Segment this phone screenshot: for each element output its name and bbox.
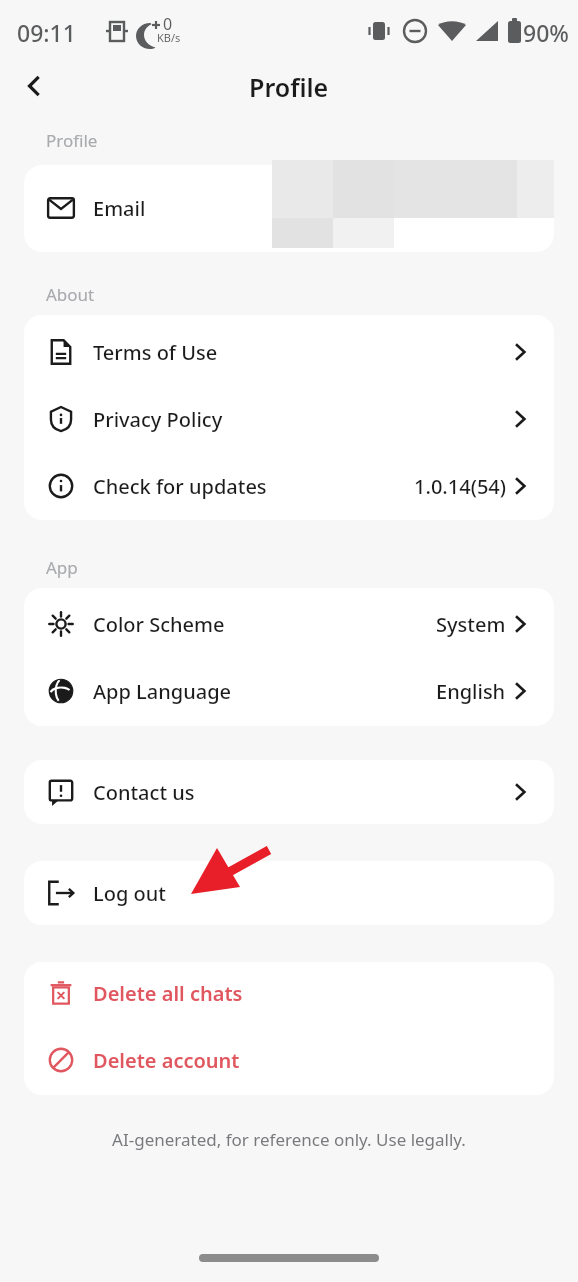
staticText: System xyxy=(436,611,506,638)
staticText: 09:11 xyxy=(17,17,76,48)
staticText: Privacy Policy xyxy=(93,406,223,433)
button[interactable] xyxy=(24,658,554,724)
staticText: AI-generated, for reference only. Use le… xyxy=(112,1128,466,1151)
button[interactable] xyxy=(24,386,554,452)
staticText: 0 xyxy=(163,13,173,35)
staticText: Profile xyxy=(46,129,98,152)
button[interactable] xyxy=(24,175,554,241)
staticText: Delete account xyxy=(93,1047,240,1074)
staticText: 90% xyxy=(523,17,569,48)
button[interactable] xyxy=(24,319,554,385)
staticText: Terms of Use xyxy=(93,339,218,366)
button[interactable] xyxy=(24,453,554,519)
staticText: KB/s xyxy=(157,30,181,45)
staticText: Profile xyxy=(249,70,329,104)
button[interactable]: Back xyxy=(12,63,58,109)
staticText: App xyxy=(46,556,78,579)
staticText: App Language xyxy=(93,678,232,705)
staticText: Check for updates xyxy=(93,473,267,500)
staticText: English xyxy=(436,678,506,705)
staticText: 1.0.14(54) xyxy=(414,473,506,500)
staticText: Contact us xyxy=(93,779,195,806)
staticText: Delete all chats xyxy=(93,980,243,1007)
staticText: Color Scheme xyxy=(93,611,225,638)
button[interactable] xyxy=(24,960,554,1026)
button[interactable] xyxy=(24,591,554,657)
button[interactable] xyxy=(24,1027,554,1093)
staticText: Email xyxy=(93,195,146,222)
staticText: About xyxy=(46,283,95,306)
staticText: Log out xyxy=(93,880,166,907)
button[interactable] xyxy=(24,860,554,926)
button[interactable] xyxy=(24,759,554,825)
